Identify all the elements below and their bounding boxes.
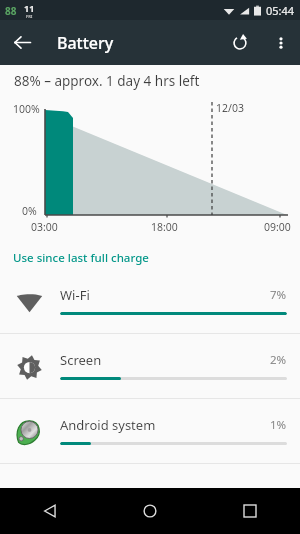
staticText: 100% <box>13 102 40 116</box>
staticText: 09:00 <box>264 220 291 234</box>
button[interactable]: More options <box>262 24 300 62</box>
staticText: 2% <box>270 352 287 368</box>
staticText: Screen <box>60 351 102 369</box>
staticText: 1% <box>270 417 287 433</box>
staticText: 88% – approx. 1 day 4 hrs left <box>14 72 200 90</box>
staticText: 0% <box>22 204 37 218</box>
staticText: 03:00 <box>31 220 58 234</box>
button[interactable]: Back <box>0 20 45 65</box>
button[interactable]: Android system <box>0 399 300 463</box>
button[interactable]: Wi-Fi <box>0 269 300 333</box>
staticText: FRI <box>26 14 33 19</box>
staticText: 12/03 <box>216 101 244 115</box>
staticText: Wi-Fi <box>60 286 90 304</box>
staticText: Android system <box>60 416 156 434</box>
button[interactable]: Home <box>100 488 200 534</box>
staticText: 05:44 <box>266 3 295 18</box>
staticText: 88 <box>5 4 17 18</box>
staticText: 18:00 <box>151 220 178 234</box>
button[interactable]: Back <box>0 488 100 534</box>
staticText: Battery <box>57 32 114 54</box>
button[interactable]: Refresh <box>218 21 262 65</box>
staticText: 7% <box>270 287 287 303</box>
button[interactable]: Screen <box>0 334 300 398</box>
staticText: Use since last full charge <box>13 250 149 266</box>
button[interactable]: Recent apps <box>200 488 300 534</box>
staticText: 11 <box>24 2 35 14</box>
